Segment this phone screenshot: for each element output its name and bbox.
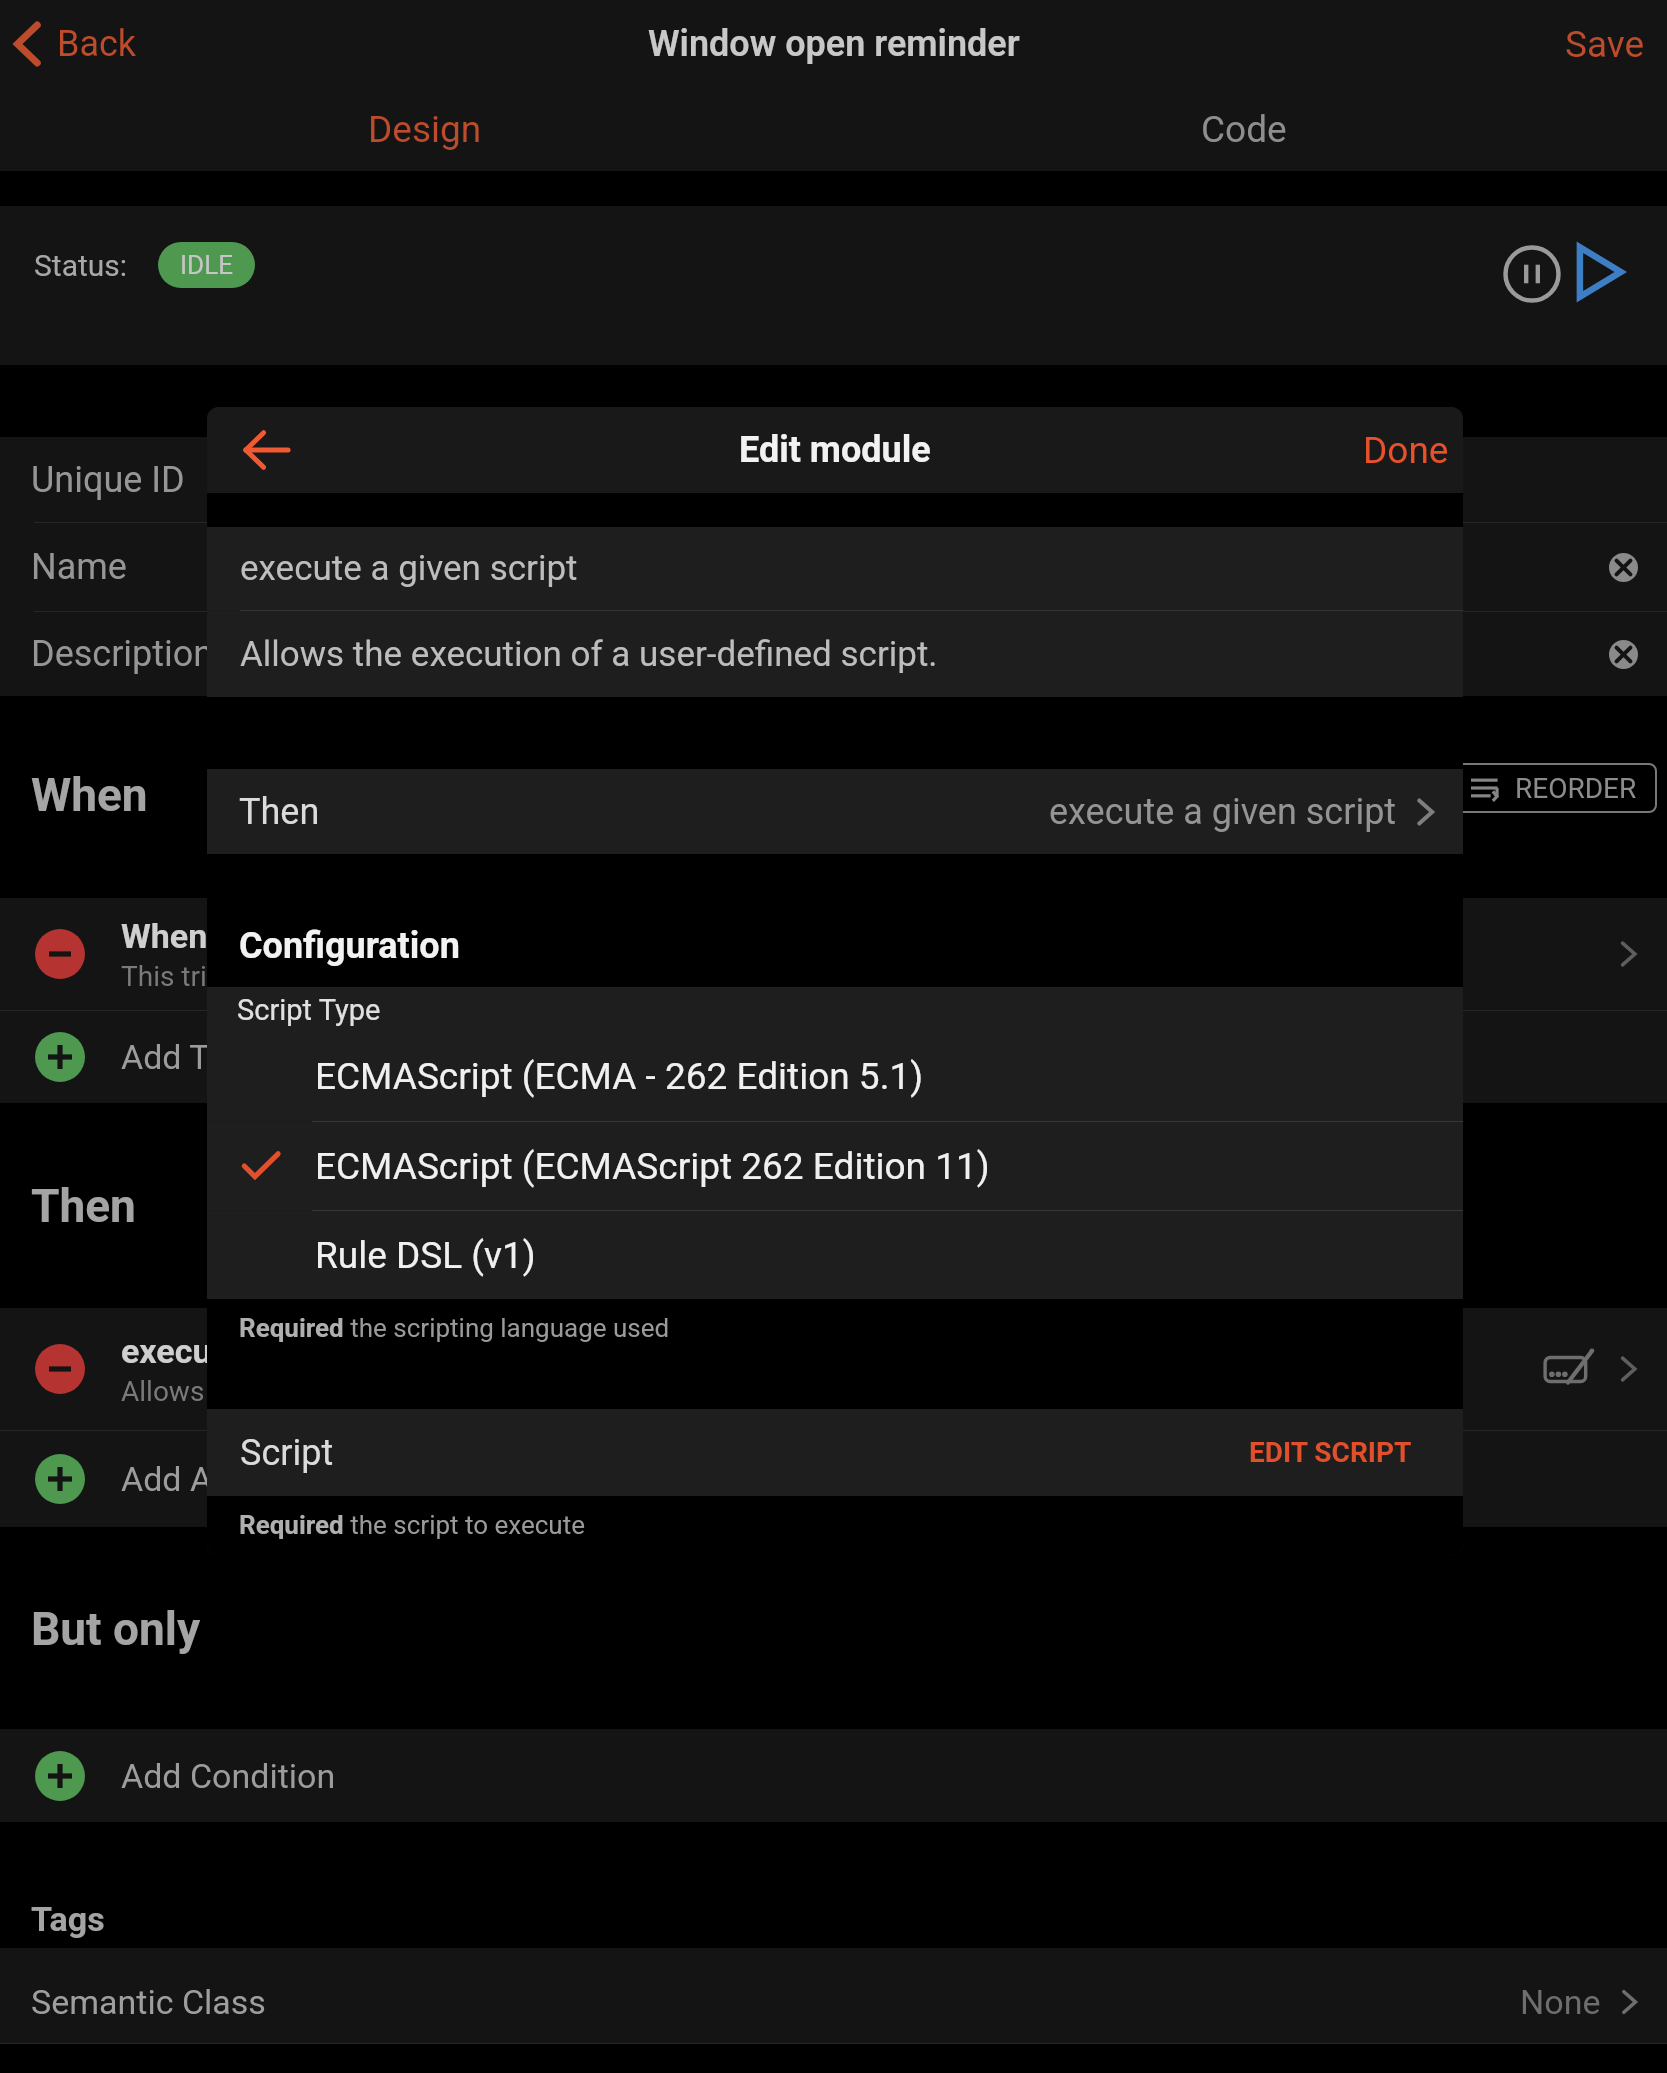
button[interactable]: Pause [1494, 236, 1570, 312]
staticText: This trigger fires when the window op [121, 960, 586, 993]
button[interactable]: ECMAScript (ECMAScript 262 Edition 11) [207, 1122, 1463, 1210]
button[interactable]: Code [1084, 88, 1404, 171]
staticText: Description [31, 633, 214, 675]
staticText: Edit module [739, 429, 931, 471]
staticText: Tags [31, 1899, 105, 1939]
staticText: When [31, 768, 148, 822]
button[interactable]: Save [1543, 11, 1667, 78]
button[interactable]: ECMAScript (ECMA - 262 Edition 5.1) [207, 1032, 1463, 1121]
button[interactable]: REORDER [1421, 763, 1657, 813]
staticText: execute a given script [1049, 791, 1397, 833]
staticText: Allows the execution of a user-define [121, 1375, 579, 1408]
staticText: ECMAScript (ECMA - 262 Edition 5.1) [315, 1055, 924, 1098]
button[interactable]: Clear [1601, 545, 1645, 589]
staticText: Status: [34, 248, 128, 283]
staticText: Add Action [121, 1459, 288, 1499]
button[interactable]: Edit [1539, 1340, 1597, 1398]
staticText: Code [1201, 108, 1287, 151]
staticText: None [1520, 1982, 1601, 2022]
staticText: Required the scripting language used [239, 1313, 670, 1343]
button[interactable]: Back [229, 413, 303, 487]
staticText: Rule DSL (v1) [315, 1234, 536, 1277]
staticText: REORDER [1515, 772, 1637, 805]
staticText: Unique ID [31, 459, 185, 501]
button[interactable]: Then [207, 769, 1463, 854]
staticText: But only [31, 1602, 201, 1656]
button[interactable]: Add Condition [35, 1729, 1632, 1822]
staticText: Allows the execution of a user-defined s… [240, 634, 938, 675]
staticText: ECMAScript (ECMAScript 262 Edition 11) [315, 1145, 990, 1188]
staticText: Back [57, 23, 137, 65]
button[interactable]: Semantic Class [0, 1948, 1667, 2043]
button[interactable]: Run [1558, 234, 1634, 310]
staticText: Script [240, 1432, 334, 1474]
button[interactable]: Rule DSL (v1) [207, 1211, 1463, 1299]
staticText: Script Type [237, 993, 381, 1027]
button[interactable]: Add Action [35, 1431, 1632, 1527]
button[interactable]: EDIT SCRIPT [1229, 1420, 1463, 1485]
staticText: execute a given script [121, 1331, 455, 1371]
staticText: When the window is opened [121, 916, 546, 956]
button[interactable]: execute a given script [35, 1308, 1645, 1430]
staticText: Add Trigger [121, 1037, 296, 1077]
staticText: Then [31, 1179, 136, 1233]
button[interactable]: Clear [1601, 632, 1645, 676]
button[interactable]: Design [265, 88, 585, 171]
staticText: IDLE [180, 250, 233, 280]
button[interactable]: Done [1343, 415, 1463, 486]
staticText: Name [31, 546, 127, 588]
staticText: Semantic Class [31, 1982, 266, 2022]
staticText: Window open reminder [648, 23, 1020, 65]
staticText: Configuration [239, 925, 460, 967]
staticText: Add Condition [121, 1756, 336, 1796]
staticText: Required the script to execute [239, 1510, 585, 1540]
staticText: execute a given script [240, 548, 578, 589]
staticText: Then [239, 791, 320, 833]
button[interactable]: When the window is opened [35, 898, 1645, 1010]
staticText: Design [368, 108, 482, 151]
button[interactable]: Back [0, 12, 155, 76]
button[interactable]: Add Trigger [35, 1011, 1632, 1103]
